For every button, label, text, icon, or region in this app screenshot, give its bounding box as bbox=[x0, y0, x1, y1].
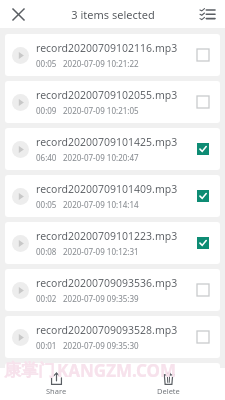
button[interactable]: Not selected bbox=[190, 89, 216, 115]
staticText: 00:05 bbox=[36, 58, 57, 69]
staticText: 2020-07-09 10:21:22 bbox=[63, 58, 139, 69]
staticText: record20200709102116.mp3 bbox=[36, 41, 178, 55]
staticText: record20200709093518.mp3 bbox=[36, 368, 178, 382]
staticText: 06:40 bbox=[36, 152, 57, 163]
staticText: 00:02 bbox=[36, 293, 57, 304]
button[interactable]: Not selected bbox=[190, 324, 216, 350]
button[interactable]: record20200709101223.mp3 bbox=[5, 222, 220, 264]
button[interactable]: Selected bbox=[190, 183, 216, 209]
staticText: 2020-07-09 09:35:30 bbox=[63, 340, 139, 351]
staticText: 康掌门 bbox=[4, 360, 55, 381]
button[interactable]: Close bbox=[6, 2, 30, 26]
staticText: record20200709093536.mp3 bbox=[36, 276, 178, 290]
button[interactable]: Not selected bbox=[190, 277, 216, 303]
button[interactable]: Selected bbox=[190, 230, 216, 256]
button[interactable]: record20200709093528.mp3 bbox=[5, 316, 220, 358]
staticText: 2020-07-09 09:35:39 bbox=[63, 293, 139, 304]
staticText: record20200709101425.mp3 bbox=[36, 135, 178, 149]
staticText: 00:09 bbox=[36, 105, 57, 116]
button[interactable]: record20200709102116.mp3 bbox=[5, 34, 220, 76]
staticText: 00:01 bbox=[36, 340, 57, 351]
button[interactable]: Share bbox=[36, 370, 77, 398]
staticText: 2020-07-09 10:20:47 bbox=[63, 152, 139, 163]
staticText: 00:03 bbox=[36, 385, 57, 396]
staticText: 2020-07-09 09:35:20 bbox=[63, 385, 139, 396]
staticText: record20200709093528.mp3 bbox=[36, 323, 178, 337]
staticText: 00:08 bbox=[36, 246, 57, 257]
staticText: Share bbox=[46, 386, 67, 396]
button[interactable]: record20200709101425.mp3 bbox=[5, 128, 220, 170]
button[interactable]: record20200709093536.mp3 bbox=[5, 269, 220, 311]
button[interactable]: Selected bbox=[190, 136, 216, 162]
staticText: 2020-07-09 10:14:14 bbox=[63, 199, 139, 210]
staticText: 2020-07-09 10:21:05 bbox=[63, 105, 139, 116]
staticText: 00:05 bbox=[36, 199, 57, 210]
staticText: record20200709102055.mp3 bbox=[36, 88, 178, 102]
button[interactable]: record20200709093518.mp3 bbox=[5, 363, 220, 400]
button[interactable]: record20200709102055.mp3 bbox=[5, 81, 220, 123]
staticText: 2020-07-09 10:12:31 bbox=[63, 246, 139, 257]
button[interactable]: record20200709101409.mp3 bbox=[5, 175, 220, 217]
staticText: record20200709101223.mp3 bbox=[36, 229, 178, 243]
staticText: KANGZM.COM bbox=[57, 359, 177, 382]
staticText: Delete bbox=[157, 386, 180, 396]
button[interactable]: Not selected bbox=[190, 42, 216, 68]
button[interactable]: Select all bbox=[195, 2, 219, 26]
button[interactable]: Delete bbox=[147, 370, 190, 398]
staticText: 3 items selected bbox=[71, 7, 155, 22]
staticText: record20200709101409.mp3 bbox=[36, 182, 178, 196]
